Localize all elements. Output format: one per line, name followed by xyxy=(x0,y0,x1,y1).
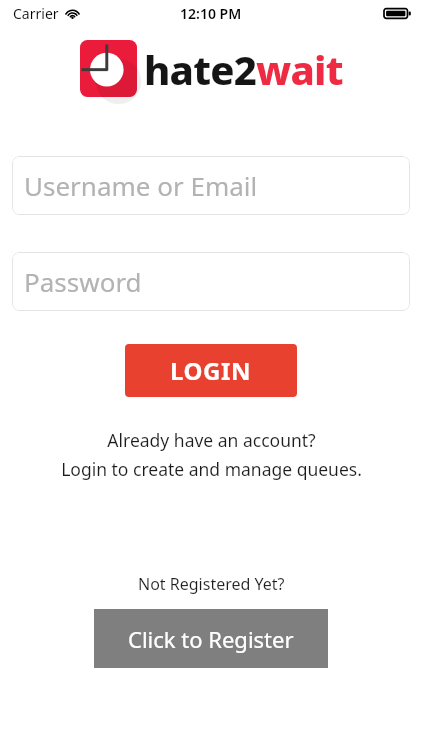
staticText: hate2wait xyxy=(144,42,343,96)
staticText: Carrier xyxy=(13,4,59,23)
button[interactable]: Click to Register xyxy=(94,609,328,668)
button[interactable]: Password xyxy=(12,252,410,311)
staticText: 12:10 PM xyxy=(180,4,242,23)
staticText: Not Registered Yet? xyxy=(138,573,285,595)
staticText: Login to create and manage queues. xyxy=(61,457,362,481)
staticText: LOGIN xyxy=(170,354,252,387)
staticText: Username or Email xyxy=(24,168,258,203)
staticText: Click to Register xyxy=(128,624,294,654)
button[interactable]: LOGIN xyxy=(125,344,297,397)
button[interactable]: Username or Email xyxy=(12,156,410,215)
staticText: Already have an account? xyxy=(107,428,316,452)
staticText: Password xyxy=(24,264,142,299)
